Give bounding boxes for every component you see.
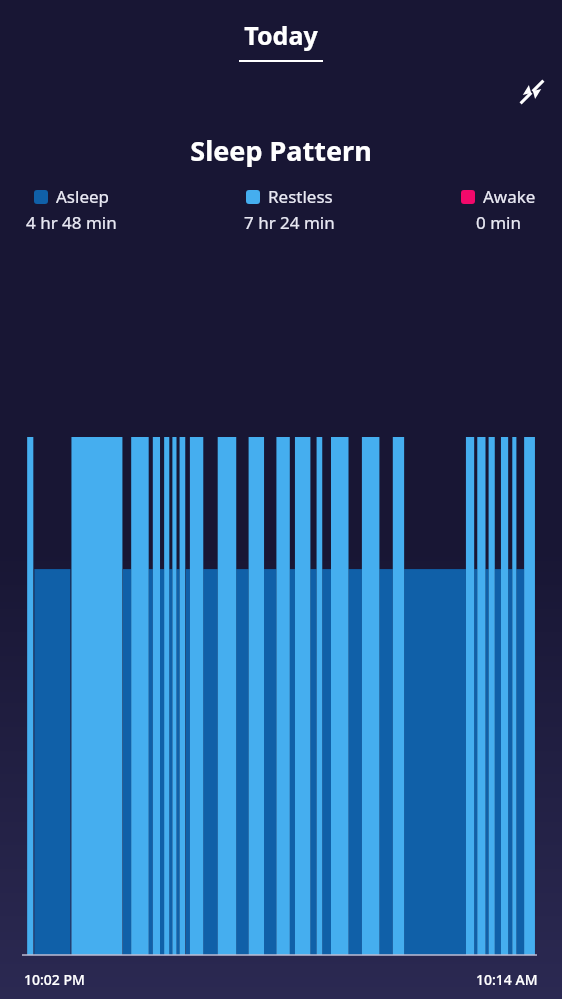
staticText: 0 min [476, 211, 521, 234]
staticText: Sleep Pattern [0, 132, 562, 169]
staticText: 4 hr 48 min [26, 211, 117, 234]
button[interactable]: Restless [244, 185, 335, 234]
staticText: Asleep [56, 185, 110, 208]
button[interactable]: Today [239, 18, 323, 62]
button[interactable]: Awake [461, 185, 536, 234]
staticText: Today [244, 18, 318, 52]
staticText: 10:14 AM [476, 970, 538, 989]
staticText: Awake [483, 185, 536, 208]
button[interactable]: Asleep [26, 185, 117, 234]
button[interactable]: 10:02 PM [0, 429, 562, 999]
staticText: 10:02 PM [24, 970, 85, 989]
staticText: 7 hr 24 min [244, 211, 335, 234]
button[interactable]: Collapse [510, 70, 554, 114]
staticText: Restless [268, 185, 333, 208]
